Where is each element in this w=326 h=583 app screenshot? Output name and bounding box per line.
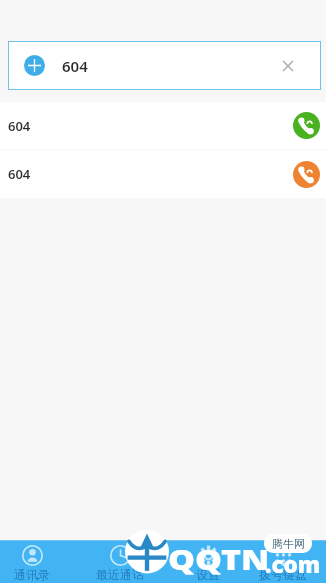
button[interactable]: Clear	[271, 49, 305, 83]
button[interactable]: Call	[293, 161, 320, 188]
staticText: 通讯录	[14, 567, 50, 582]
button[interactable]: 拨号键盘	[252, 540, 314, 583]
staticText: .com	[265, 549, 321, 579]
button[interactable]: Add contact	[24, 55, 45, 76]
button[interactable]: 604	[0, 102, 326, 149]
button[interactable]: 通讯录	[0, 540, 76, 583]
button[interactable]: 604	[0, 150, 326, 198]
staticText: 腾牛网	[272, 537, 305, 551]
staticText: 最近通话	[96, 567, 144, 582]
staticText: QQTN	[168, 540, 270, 578]
staticText: 604	[62, 56, 88, 76]
button[interactable]: Add contact	[8, 41, 321, 90]
button[interactable]: Call	[293, 112, 320, 139]
staticText: 拨号键盘	[259, 567, 307, 582]
button[interactable]: 最近通话	[76, 540, 164, 583]
staticText: 604	[8, 117, 31, 135]
button[interactable]: 设置	[164, 540, 252, 583]
staticText: 604	[8, 165, 31, 183]
staticText: 设置	[196, 567, 220, 582]
